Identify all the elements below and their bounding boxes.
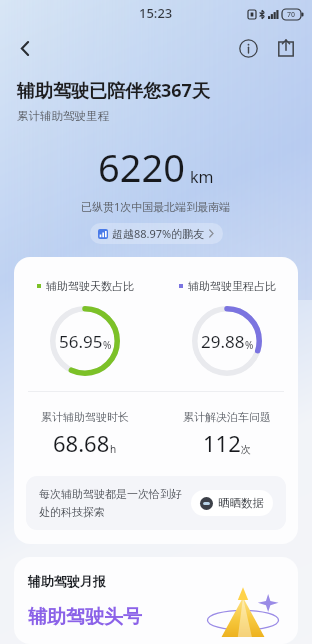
staticText: 辅助驾驶里程占比 (188, 279, 276, 293)
staticText: 累计解决泊车问题 (183, 410, 271, 424)
staticText: km (190, 166, 214, 188)
staticText: 56.95 (59, 330, 103, 353)
staticText: 超越88.97%的鹏友 (112, 226, 205, 241)
staticText: 112 (203, 428, 241, 458)
staticText: 辅助驾驶已陪伴您367天 (17, 78, 210, 103)
staticText: 68.68 (53, 428, 110, 458)
staticText: % (245, 338, 254, 352)
button[interactable]: 辅助驾驶月报 (14, 557, 298, 644)
staticText: h (110, 442, 117, 456)
staticText: 29.88 (201, 330, 245, 353)
button[interactable]: 超越88.97%的鹏友 (90, 223, 223, 244)
staticText: 辅助驾驶头号 (28, 605, 142, 629)
button[interactable]: 晒晒数据 (191, 490, 273, 516)
staticText: 已纵贯1次中国最北端到最南端 (81, 199, 231, 214)
button[interactable]: Info (233, 33, 263, 63)
staticText: 6220 (98, 141, 185, 193)
staticText: 辅助驾驶月报 (28, 573, 106, 589)
staticText: 15:23 (139, 4, 173, 22)
staticText: 次 (241, 443, 251, 456)
staticText: 处的科技探索 (39, 505, 105, 519)
staticText: 70 (287, 10, 296, 20)
button[interactable]: Back (8, 31, 42, 65)
staticText: % (103, 338, 112, 352)
button[interactable]: Share (271, 33, 301, 63)
staticText: 辅助驾驶天数占比 (46, 279, 134, 293)
staticText: 累计辅助驾驶里程 (17, 109, 109, 123)
staticText: 每次辅助驾驶都是一次恰到好 (39, 487, 182, 501)
staticText: 晒晒数据 (218, 496, 264, 510)
staticText: 累计辅助驾驶时长 (41, 410, 129, 424)
